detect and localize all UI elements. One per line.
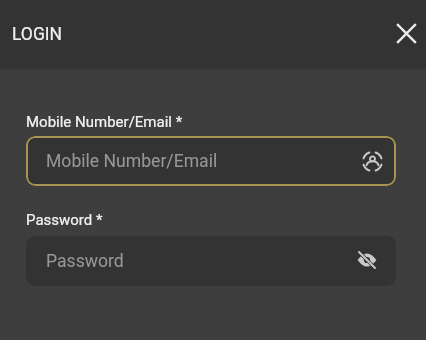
staticText: Mobile Number/Email [46, 151, 218, 172]
button[interactable]: Show password [350, 243, 384, 277]
staticText: Password * [26, 211, 103, 229]
button[interactable]: Close [386, 13, 426, 53]
staticText: LOGIN [12, 24, 63, 45]
button[interactable]: Mobile Number/Email [26, 136, 396, 186]
button[interactable]: Pick from contacts [355, 144, 389, 178]
staticText: Mobile Number/Email * [26, 113, 183, 131]
staticText: Password [46, 251, 124, 272]
button[interactable]: Password [26, 236, 396, 286]
